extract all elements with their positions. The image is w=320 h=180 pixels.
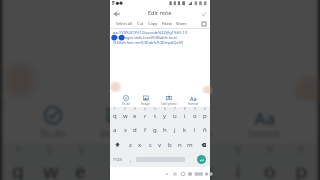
button[interactable]: To-do (37, 106, 69, 140)
staticText: q (113, 112, 117, 120)
button[interactable]: z (125, 137, 135, 152)
button[interactable]: 2 (120, 107, 130, 122)
button[interactable]: 5 (128, 144, 160, 180)
staticText: d (133, 126, 137, 134)
button[interactable]: 7 (191, 144, 223, 180)
button[interactable]: 4 (97, 144, 128, 180)
staticText: To-do (40, 128, 65, 140)
staticText: i (184, 112, 186, 120)
button[interactable]: l (190, 122, 200, 137)
button[interactable]: ?123 (110, 152, 126, 167)
staticText: w (123, 112, 128, 120)
staticText: ?123 (113, 157, 123, 163)
button[interactable]: Take photo (160, 95, 178, 106)
button[interactable]: f (140, 122, 150, 137)
button[interactable]: Aa (187, 95, 200, 106)
button[interactable]: v (155, 137, 165, 152)
staticText: r (144, 112, 147, 120)
button[interactable]: More options (200, 20, 208, 28)
button[interactable]: Enter (197, 155, 206, 164)
button[interactable]: 9 (254, 144, 286, 180)
staticText: 4 (144, 107, 146, 111)
button[interactable]: 2 (34, 144, 65, 180)
staticText: aa://V9%2f1f%12/vscode%22@g1%65.10 (113, 30, 187, 35)
button[interactable]: a (110, 122, 120, 137)
staticText: s (124, 126, 127, 134)
button[interactable]: 8 (180, 107, 190, 122)
staticText: e (75, 159, 88, 180)
button[interactable]: j (170, 122, 180, 137)
button[interactable]: Copy (146, 20, 160, 27)
staticText: Cut (137, 21, 144, 26)
staticText: z (129, 141, 132, 149)
button[interactable]: Aa (245, 106, 286, 140)
staticText: Take photo (163, 128, 214, 140)
staticText: Aa (254, 106, 277, 125)
button[interactable]: d (130, 122, 140, 137)
button[interactable]: Shift (110, 137, 125, 152)
button[interactable]: 5 (150, 107, 160, 122)
staticText: 8 (184, 107, 186, 111)
button[interactable]: Share (174, 20, 189, 27)
button[interactable]: Switch language (187, 170, 207, 178)
button[interactable]: c (145, 137, 155, 152)
button[interactable]: 4 (140, 107, 150, 122)
button[interactable]: 3 (130, 107, 140, 122)
staticText: 3 (134, 107, 136, 111)
staticText: c (149, 141, 152, 149)
button[interactable]: 6 (160, 107, 170, 122)
staticText: w (43, 159, 59, 180)
staticText: Take photo (161, 102, 177, 106)
button[interactable]: 0 (286, 144, 317, 180)
button[interactable]: Image (140, 95, 152, 106)
button[interactable]: Settings (171, 170, 179, 178)
button[interactable]: g (150, 122, 160, 137)
staticText: o (264, 159, 277, 180)
button[interactable]: Select all (114, 20, 135, 27)
button[interactable]: h (160, 122, 170, 137)
button[interactable]: ñ (200, 122, 210, 137)
staticText: a (113, 126, 117, 134)
button[interactable]: Hide keyboard (163, 170, 171, 178)
button[interactable]: Cut (135, 20, 146, 27)
button[interactable]: b (165, 137, 175, 152)
staticText: l (194, 126, 196, 134)
button[interactable]: Paste (160, 20, 174, 27)
button[interactable]: 6 (160, 144, 191, 180)
button[interactable]: 1 (110, 107, 120, 122)
button[interactable]: m (185, 137, 195, 152)
staticText: n (178, 141, 182, 149)
button[interactable]: , (126, 152, 135, 167)
button[interactable]: 3 (65, 144, 97, 180)
button[interactable]: Save note (199, 9, 208, 18)
button[interactable]: Back (112, 9, 121, 18)
button[interactable]: Image (97, 106, 135, 140)
button[interactable]: Emoji (179, 170, 187, 178)
staticText: v (158, 141, 162, 149)
button[interactable]: 0 (200, 107, 210, 122)
staticText: t (154, 112, 157, 120)
button[interactable]: s (120, 122, 130, 137)
button[interactable]: k (180, 122, 190, 137)
staticText: r (110, 159, 119, 180)
staticText: 6 (173, 144, 179, 156)
button[interactable]: x (135, 137, 145, 152)
staticText: Select all (116, 21, 133, 26)
button[interactable]: 9 (190, 107, 200, 122)
staticText: 2 (124, 107, 126, 111)
button[interactable]: 1 (2, 144, 34, 180)
staticText: u (173, 112, 177, 120)
button[interactable]: To-do (121, 95, 131, 106)
button[interactable]: Take photo (160, 106, 217, 140)
staticText: f (144, 126, 147, 134)
button[interactable]: 7 (170, 107, 180, 122)
button[interactable]: n (175, 137, 185, 152)
staticText: h (163, 126, 167, 134)
button[interactable]: Backspace (195, 137, 210, 152)
staticText: 7 (204, 144, 210, 156)
